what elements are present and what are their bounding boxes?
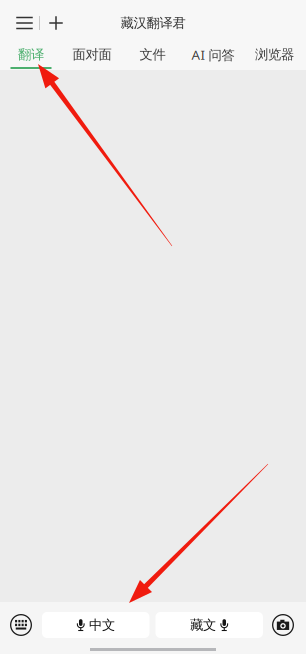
button[interactable]: Menu — [10, 2, 39, 43]
button[interactable]: 文件 — [122, 42, 183, 70]
staticText: 面对面 — [72, 46, 111, 63]
staticText: 翻译 — [18, 46, 44, 63]
button[interactable]: 中文 — [42, 612, 149, 638]
button[interactable]: New chat — [40, 2, 72, 43]
staticText: 浏览器 — [255, 46, 294, 63]
button[interactable]: Camera — [272, 612, 294, 638]
button[interactable]: 藏文 — [155, 612, 263, 638]
button[interactable]: 浏览器 — [243, 42, 306, 70]
staticText: 藏文 — [190, 617, 216, 633]
staticText: 中文 — [89, 617, 115, 633]
button[interactable]: 面对面 — [62, 42, 122, 70]
staticText: 文件 — [139, 46, 165, 63]
button[interactable]: Keyboard — [10, 612, 32, 638]
button[interactable]: 翻译 — [0, 42, 62, 70]
staticText: AI 问答 — [191, 45, 234, 64]
button[interactable]: AI 问答 — [183, 42, 243, 70]
staticText: 藏汉翻译君 — [120, 15, 185, 31]
